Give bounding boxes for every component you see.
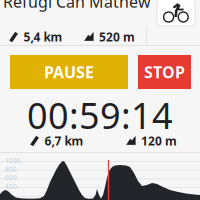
- staticText: 600: [5, 173, 17, 182]
- staticText: 6,7 km: [44, 133, 83, 149]
- staticText: PAUSE: [44, 61, 94, 83]
- staticText: 800: [5, 165, 17, 173]
- staticText: 520 m: [99, 29, 135, 45]
- staticText: 400: [5, 182, 17, 191]
- staticText: Refugi Can Mathew: [3, 0, 151, 12]
- staticText: 00:59:14: [27, 91, 173, 139]
- button[interactable]: STOP: [138, 55, 191, 89]
- button[interactable]: PAUSE: [10, 55, 128, 89]
- staticText: 120 m: [141, 133, 177, 149]
- button[interactable]: Activity type: cycling: [157, 0, 195, 26]
- staticText: 5,4 km: [23, 29, 62, 45]
- staticText: STOP: [144, 61, 185, 83]
- staticText: 1000: [5, 156, 21, 165]
